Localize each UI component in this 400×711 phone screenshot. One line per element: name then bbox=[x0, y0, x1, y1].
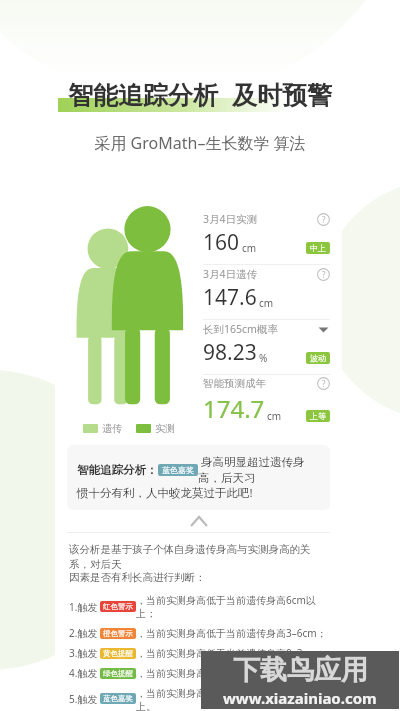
staticText: 遗传 bbox=[102, 422, 122, 435]
staticText: 智能追踪分析 bbox=[68, 80, 218, 111]
button[interactable]: 智能预测成年 bbox=[203, 377, 330, 425]
button[interactable]: 说明 bbox=[317, 213, 330, 226]
staticText: 160 bbox=[203, 228, 240, 257]
staticText: 下载鸟应用 bbox=[233, 653, 368, 687]
staticText: 采用 GroMath–生长数学 算法 bbox=[0, 132, 400, 154]
staticText: 3月4日实测 bbox=[203, 212, 258, 226]
button[interactable]: 展开 bbox=[317, 323, 330, 336]
staticText: ，当前实测身高低于当前遗传身高3–6cm； bbox=[136, 626, 327, 640]
button[interactable]: 说明 bbox=[317, 268, 330, 281]
staticText: 实测 bbox=[155, 422, 175, 435]
staticText: 绿色提醒 bbox=[103, 669, 133, 678]
staticText: 上等 bbox=[310, 411, 326, 421]
staticText: 3月4日遗传 bbox=[203, 267, 258, 281]
staticText: 及时预警 bbox=[232, 80, 332, 111]
button[interactable]: 智能追踪分析： bbox=[67, 445, 330, 510]
staticText: 147.6 bbox=[203, 283, 257, 312]
staticText: 橙色警示 bbox=[103, 629, 133, 638]
staticText: ，当前实测身高低于当前遗传身高0–3cm； bbox=[136, 646, 327, 660]
staticText: 波动 bbox=[310, 353, 326, 363]
staticText: 智能追踪分析： bbox=[77, 463, 158, 477]
staticText: 该分析是基于孩子个体自身遗传身高与实测身高的关系，对后天 bbox=[69, 543, 328, 571]
staticText: cm bbox=[267, 409, 282, 423]
staticText: cm bbox=[259, 296, 274, 310]
staticText: 1.触发 bbox=[69, 600, 98, 614]
staticText: ? bbox=[322, 214, 326, 225]
button[interactable]: 说明 bbox=[317, 377, 330, 390]
staticText: ，当前实测身高高于当前遗传身高6cm以上。 bbox=[136, 686, 328, 711]
staticText: 智能预测成年 bbox=[203, 377, 266, 390]
staticText: 蓝色嘉奖 bbox=[103, 694, 133, 703]
staticText: ，当前实测身高高于当前遗传身高0–6cm； bbox=[136, 666, 327, 680]
staticText: www.xiazainiao.com bbox=[223, 688, 377, 708]
button[interactable]: 长到165cm概率 bbox=[203, 322, 330, 367]
button[interactable]: 3月4日实测 bbox=[203, 212, 330, 257]
staticText: 身高明显超过遗传身高，后天习 bbox=[198, 454, 320, 485]
button[interactable]: 收起 bbox=[55, 510, 342, 532]
staticText: 惯十分有利，人中蛟龙莫过于此吧! bbox=[77, 485, 253, 501]
staticText: ，当前实测身高低于当前遗传身高6cm以上； bbox=[136, 593, 328, 620]
staticText: % bbox=[259, 351, 268, 365]
staticText: 4.触发 bbox=[69, 666, 98, 680]
staticText: 2.触发 bbox=[69, 626, 98, 640]
staticText: ? bbox=[322, 378, 326, 389]
staticText: 黄色提醒 bbox=[103, 649, 133, 658]
staticText: 红色警示 bbox=[103, 602, 133, 611]
staticText: 长到165cm概率 bbox=[203, 322, 278, 336]
staticText: 中上 bbox=[310, 243, 326, 253]
staticText: cm bbox=[242, 241, 257, 255]
staticText: 因素是否有利长高进行判断： bbox=[69, 571, 206, 584]
staticText: 3.触发 bbox=[69, 646, 98, 660]
staticText: 98.23 bbox=[203, 338, 257, 367]
staticText: 蓝色嘉奖 bbox=[162, 465, 194, 475]
staticText: ? bbox=[322, 269, 326, 280]
staticText: 174.7 bbox=[203, 392, 265, 425]
staticText: 5.触发 bbox=[69, 692, 98, 706]
button[interactable]: 3月4日遗传 bbox=[203, 267, 330, 312]
